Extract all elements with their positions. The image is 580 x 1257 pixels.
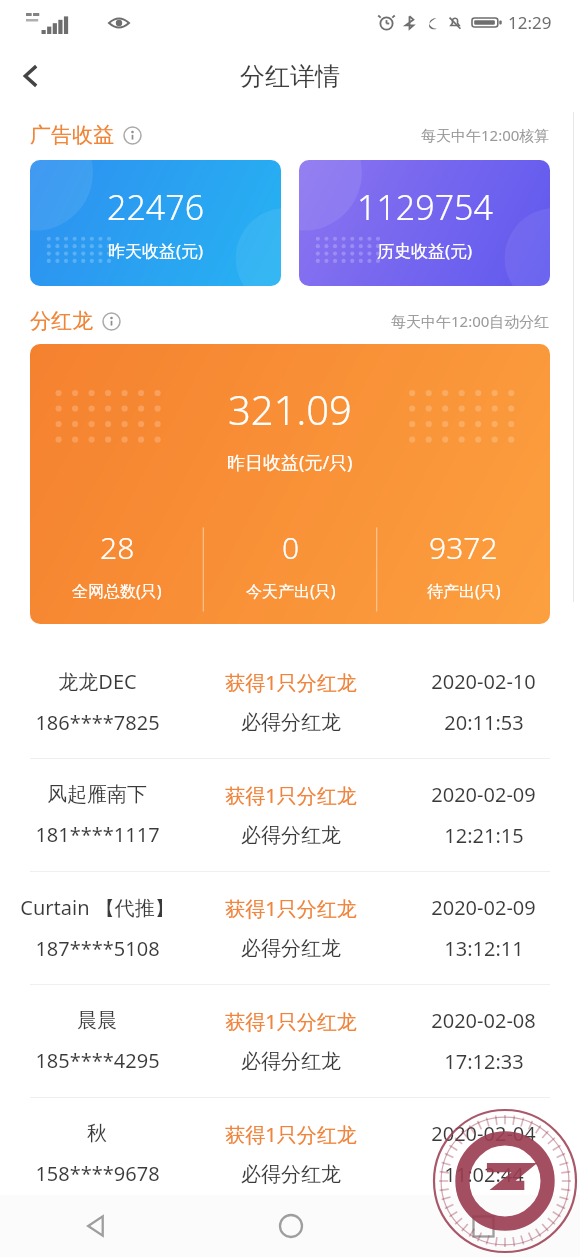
staticText: 9372 [429,527,498,568]
staticText: 2020-02-04 [431,1120,536,1147]
staticText: 必得分红龙 [241,1049,341,1074]
staticText: 晨晨 [77,1008,117,1033]
staticText: 获得1只分红龙 [225,1008,357,1035]
staticText: 必得分红龙 [241,1162,341,1187]
button[interactable]: Back [0,1195,194,1257]
button[interactable]: Curtain 【代推】 [0,872,580,984]
staticText: 获得1只分红龙 [225,1121,357,1148]
staticText: 今天产出(只) [246,580,336,602]
staticText: 分红龙 [30,308,93,334]
staticText: 必得分红龙 [241,936,341,961]
staticText: 获得1只分红龙 [225,669,357,696]
button[interactable]: Recent apps [387,1195,580,1257]
staticText: 风起雁南下 [47,782,147,807]
staticText: 1129754 [357,184,493,230]
staticText: Curtain 【代推】 [20,894,175,921]
button[interactable]: 龙龙DEC [0,646,580,758]
staticText: 2020-02-08 [431,1007,536,1034]
staticText: 17:12:33 [444,1048,524,1075]
staticText: 分红详情 [240,61,340,92]
staticText: 龙龙DEC [58,668,137,695]
staticText: 20:11:53 [444,709,524,736]
staticText: 181****1117 [35,821,160,848]
staticText: 全网总数(只) [72,580,162,602]
staticText: 13:12:11 [444,935,524,962]
staticText: 2020-02-10 [431,668,536,695]
button[interactable]: Back [0,45,62,107]
button[interactable]: 1129754 [299,160,550,286]
staticText: 185****4295 [35,1047,160,1074]
button[interactable]: Information [101,311,122,332]
staticText: 秋 [87,1121,107,1146]
staticText: 2020-02-09 [431,894,536,921]
staticText: 28 [100,527,135,568]
staticText: 必得分红龙 [241,823,341,848]
staticText: 每天中午12:00核算 [421,125,550,145]
staticText: 获得1只分红龙 [225,895,357,922]
staticText: 必得分红龙 [241,710,341,735]
staticText: 11:02:44 [444,1161,524,1188]
staticText: 0 [282,527,300,568]
staticText: 186****7825 [35,709,160,736]
button[interactable]: 风起雁南下 [0,759,580,871]
button[interactable]: 晨晨 [0,985,580,1097]
staticText: 每天中午12:00自动分红 [391,311,550,331]
button[interactable]: 321.09 [30,344,550,624]
staticText: 158****9678 [35,1160,160,1187]
staticText: 22476 [107,184,205,230]
staticText: 获得1只分红龙 [225,782,357,809]
button[interactable]: 秋 [0,1098,580,1210]
staticText: 昨日收益(元/只) [227,450,353,475]
staticText: 12:21:15 [444,822,524,849]
staticText: 待产出(只) [427,580,501,602]
button[interactable]: Information [122,125,143,146]
staticText: 广告收益 [30,122,114,148]
staticText: 187****5108 [35,935,160,962]
staticText: 321.09 [228,382,352,436]
button[interactable]: 22476 [30,160,281,286]
staticText: 12:29 [508,11,552,34]
staticText: 历史收益(元) [377,239,473,262]
button[interactable]: Home [194,1195,387,1257]
staticText: 昨天收益(元) [108,239,204,262]
staticText: 2020-02-09 [431,781,536,808]
